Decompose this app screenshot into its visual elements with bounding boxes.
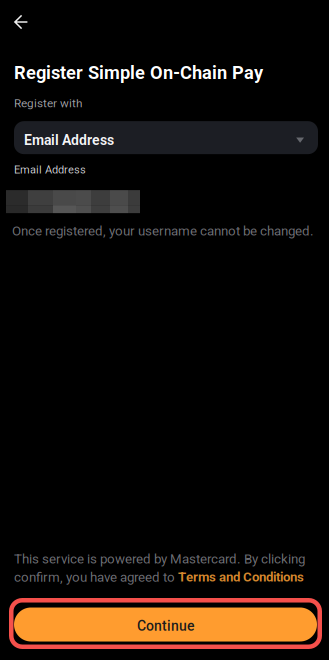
button[interactable]: Terms and Conditions [178, 569, 304, 585]
staticText: This service is powered by Mastercard. B… [14, 551, 305, 567]
button[interactable]: Back [0, 7, 54, 37]
staticText: Email Address [24, 132, 114, 148]
staticText: Register with [14, 96, 82, 110]
button[interactable]: Email Address [14, 121, 318, 154]
staticText: Email Address [14, 163, 86, 176]
staticText: confirm, you have agreed to [14, 569, 178, 585]
staticText: Once registered, your username cannot be… [12, 223, 314, 239]
staticText: Register Simple On-Chain Pay [14, 62, 263, 83]
staticText: Terms and Conditions [178, 569, 304, 585]
staticText: Continue [137, 618, 194, 634]
button[interactable]: Continue [9, 598, 322, 649]
